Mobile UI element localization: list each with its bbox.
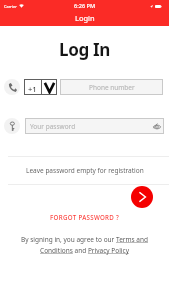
staticText: Your password xyxy=(30,122,76,131)
button[interactable]: Your password xyxy=(25,118,164,134)
staticText: Phone number xyxy=(89,83,135,92)
staticText: +1 xyxy=(28,84,37,94)
button[interactable]: Continue xyxy=(131,186,153,208)
staticText: Login xyxy=(75,13,95,23)
staticText: Log In xyxy=(59,38,110,61)
button[interactable]: Show password xyxy=(153,122,161,130)
staticText: 6:26 PM xyxy=(74,2,96,10)
button[interactable]: Phone number xyxy=(60,79,163,95)
staticText: By signing in, you agree to our Terms an… xyxy=(14,235,155,255)
staticText: FORGOT PASSWORD ? xyxy=(50,213,120,221)
button[interactable]: FORGOT PASSWORD ? xyxy=(46,212,124,222)
staticText: Carrier xyxy=(4,4,17,9)
staticText: Leave password empty for registration xyxy=(26,166,144,175)
button[interactable]: Country code xyxy=(24,79,57,95)
